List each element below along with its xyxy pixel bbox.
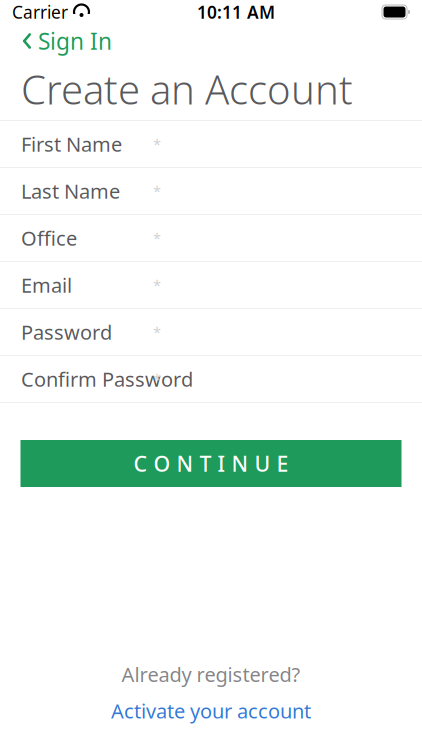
button[interactable]: Last Name [0,168,422,214]
staticText: * [153,228,161,248]
staticText: Password [21,319,112,345]
staticText: * [153,275,161,295]
staticText: Already registered? [121,661,300,687]
staticText: First Name [21,131,122,157]
staticText: * [153,322,161,342]
staticText: * [153,134,161,154]
staticText: C O N T I N U E [133,449,288,478]
button[interactable]: Password [0,309,422,355]
staticText: Sign In [38,26,112,56]
staticText: * [153,181,161,201]
staticText: * [153,369,161,389]
staticText: Email [21,272,72,298]
staticText: Create an Account [21,62,353,115]
staticText: Confirm Password [21,366,193,392]
staticText: 10:11 AM [197,0,275,23]
button[interactable]: Office [0,215,422,261]
staticText: Last Name [21,178,120,204]
button[interactable]: First Name [0,121,422,167]
button[interactable]: C O N T I N U E [20,440,401,487]
staticText: Carrier [12,0,68,23]
button[interactable]: Confirm Password [0,356,422,402]
button[interactable]: Activate your account [101,695,321,726]
button[interactable]: Sign In [9,25,124,57]
button[interactable]: Email [0,262,422,308]
staticText: Activate your account [111,697,311,724]
staticText: Office [21,225,77,251]
